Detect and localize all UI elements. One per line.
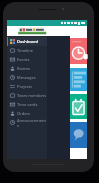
button[interactable]: Orders: [7, 109, 47, 118]
staticText: Announcements: [17, 118, 47, 127]
staticText: Timeline: [17, 48, 34, 53]
button[interactable]: Projects: [7, 82, 47, 91]
button[interactable]: Timeline: [7, 46, 47, 55]
button[interactable]: Team members: [7, 91, 47, 100]
staticText: Orders: [17, 111, 30, 116]
button[interactable]: Dashboard: [7, 37, 47, 46]
button[interactable]: Events: [7, 55, 47, 64]
button[interactable]: Announcements: [7, 118, 47, 127]
button[interactable]: Messages: [7, 73, 47, 82]
staticText: Messages: [17, 75, 36, 80]
button[interactable]: Tasks: [70, 94, 87, 119]
staticText: Projects: [17, 84, 32, 89]
button[interactable]: Rooms: [7, 64, 47, 73]
button[interactable]: Time tracking: [70, 38, 87, 64]
button[interactable]: Reports: [70, 68, 87, 91]
staticText: Time cards: [17, 102, 38, 107]
staticText: Rooms: [17, 66, 30, 71]
button[interactable]: Messages: [70, 122, 87, 148]
button[interactable]: App logo: [7, 26, 47, 36]
staticText: Events: [17, 57, 30, 62]
button[interactable]: Time cards: [7, 100, 47, 109]
staticText: Dashboard: [17, 39, 38, 44]
staticText: Team members: [17, 93, 47, 98]
